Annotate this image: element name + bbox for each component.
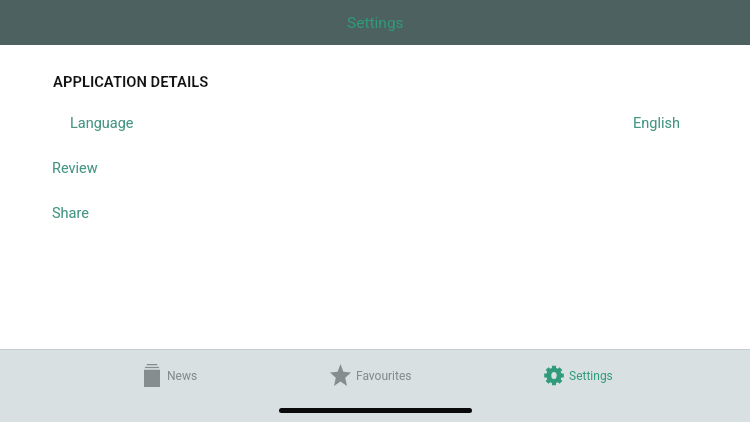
staticText: Settings	[569, 369, 613, 383]
staticText: News	[167, 369, 198, 383]
staticText: Share	[52, 205, 89, 222]
button[interactable]: Settings	[532, 350, 627, 398]
button[interactable]: Review	[0, 146, 750, 191]
staticText: Settings	[347, 14, 404, 32]
staticText: Favourites	[356, 369, 412, 383]
staticText: APPLICATION DETAILS	[53, 73, 209, 90]
staticText: English	[633, 115, 680, 132]
button[interactable]: Language	[0, 101, 750, 146]
button[interactable]: News	[132, 350, 225, 398]
button[interactable]: Favourites	[318, 350, 414, 398]
staticText: Review	[52, 160, 98, 177]
button[interactable]: Share	[0, 191, 750, 236]
staticText: Language	[70, 115, 134, 132]
